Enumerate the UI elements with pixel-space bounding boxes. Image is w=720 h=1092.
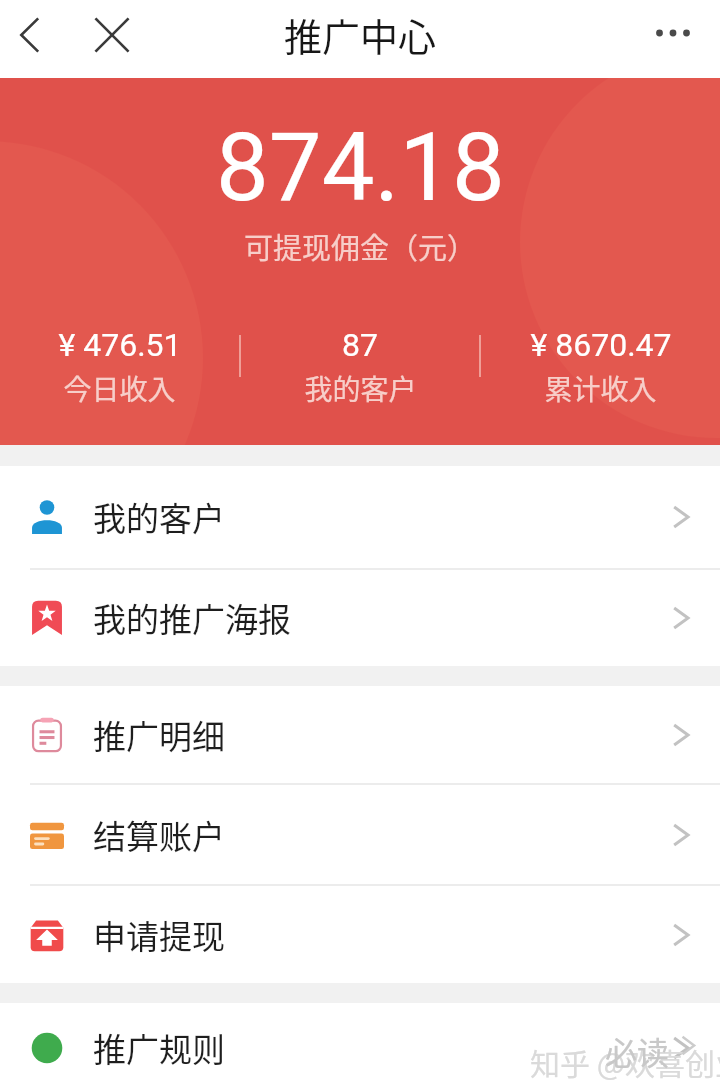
button[interactable]: Close [84,7,140,63]
staticText: 今日收入 [63,368,176,409]
staticText: ¥ 476.51 [58,326,182,364]
staticText: 申请提现 [93,911,225,959]
staticText: 推广规则 [93,1024,225,1072]
staticText: 累计收入 [544,368,657,409]
staticText: 我的推广海报 [93,594,291,642]
staticText: ¥ 8670.47 [530,326,672,364]
staticText: 可提现佣金（元） [244,225,477,267]
staticText: 87 [342,326,378,364]
staticText: 结算账户 [93,811,225,859]
button[interactable]: 结算账户 [0,785,720,884]
staticText: 874.18 [216,113,505,223]
button[interactable]: Back [3,7,59,63]
staticText: 必读 [605,1028,670,1074]
button[interactable]: 申请提现 [0,886,720,983]
staticText: 推广明细 [93,711,225,759]
button[interactable]: 我的客户 [0,466,720,568]
button[interactable]: 推广规则 [0,1003,720,1092]
staticText: 我的客户 [304,368,417,409]
button[interactable]: 我的推广海报 [0,570,720,666]
button[interactable]: 推广明细 [0,686,720,783]
staticText: 我的客户 [93,493,225,541]
button[interactable]: More options [642,2,704,64]
staticText: 推广中心 [284,7,437,62]
staticText: 知乎 @欢喜创业说 [530,1040,720,1083]
